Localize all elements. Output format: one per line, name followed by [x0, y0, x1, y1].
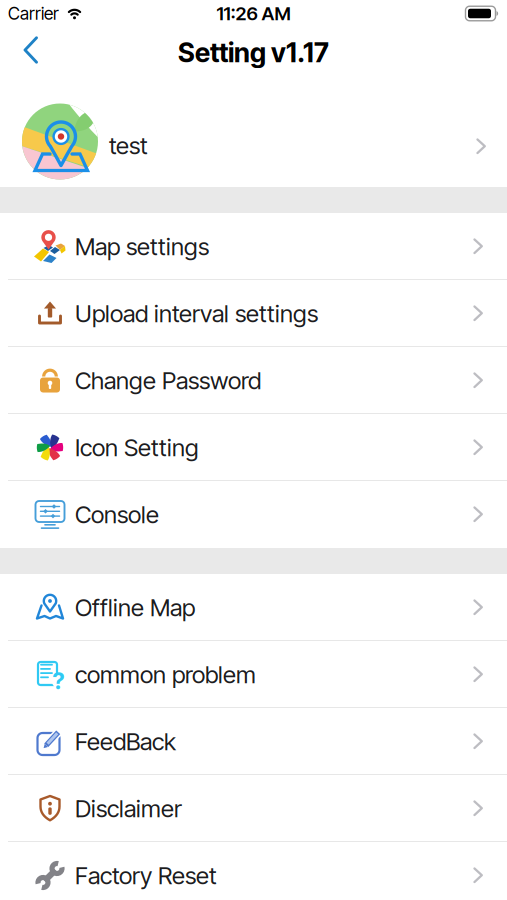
staticText: Disclaimer: [75, 794, 182, 823]
button[interactable]: Back: [0, 27, 39, 86]
button[interactable]: FeedBack: [0, 708, 507, 775]
staticText: 11:26 AM: [216, 2, 290, 24]
staticText: Map settings: [75, 232, 209, 261]
staticText: Upload interval settings: [75, 299, 318, 328]
button[interactable]: Change Password: [0, 347, 507, 414]
staticText: Change Password: [75, 366, 261, 395]
button[interactable]: Factory Reset: [0, 842, 507, 900]
staticText: test: [109, 131, 148, 160]
button[interactable]: Offline Map: [0, 574, 507, 641]
staticText: Console: [75, 500, 159, 529]
staticText: Setting v1.17: [178, 37, 329, 68]
staticText: ?: [52, 668, 64, 694]
button[interactable]: Console: [0, 481, 507, 548]
staticText: Offline Map: [75, 593, 195, 622]
staticText: Icon Setting: [75, 433, 199, 462]
staticText: FeedBack: [75, 727, 176, 756]
button[interactable]: Icon Setting: [0, 414, 507, 481]
button[interactable]: ?: [0, 641, 507, 708]
button[interactable]: Disclaimer: [0, 775, 507, 842]
staticText: Carrier: [8, 3, 59, 24]
staticText: Factory Reset: [75, 861, 217, 890]
button[interactable]: test: [0, 86, 507, 187]
staticText: common problem: [75, 660, 256, 689]
button[interactable]: Map settings: [0, 213, 507, 280]
button[interactable]: Upload interval settings: [0, 280, 507, 347]
